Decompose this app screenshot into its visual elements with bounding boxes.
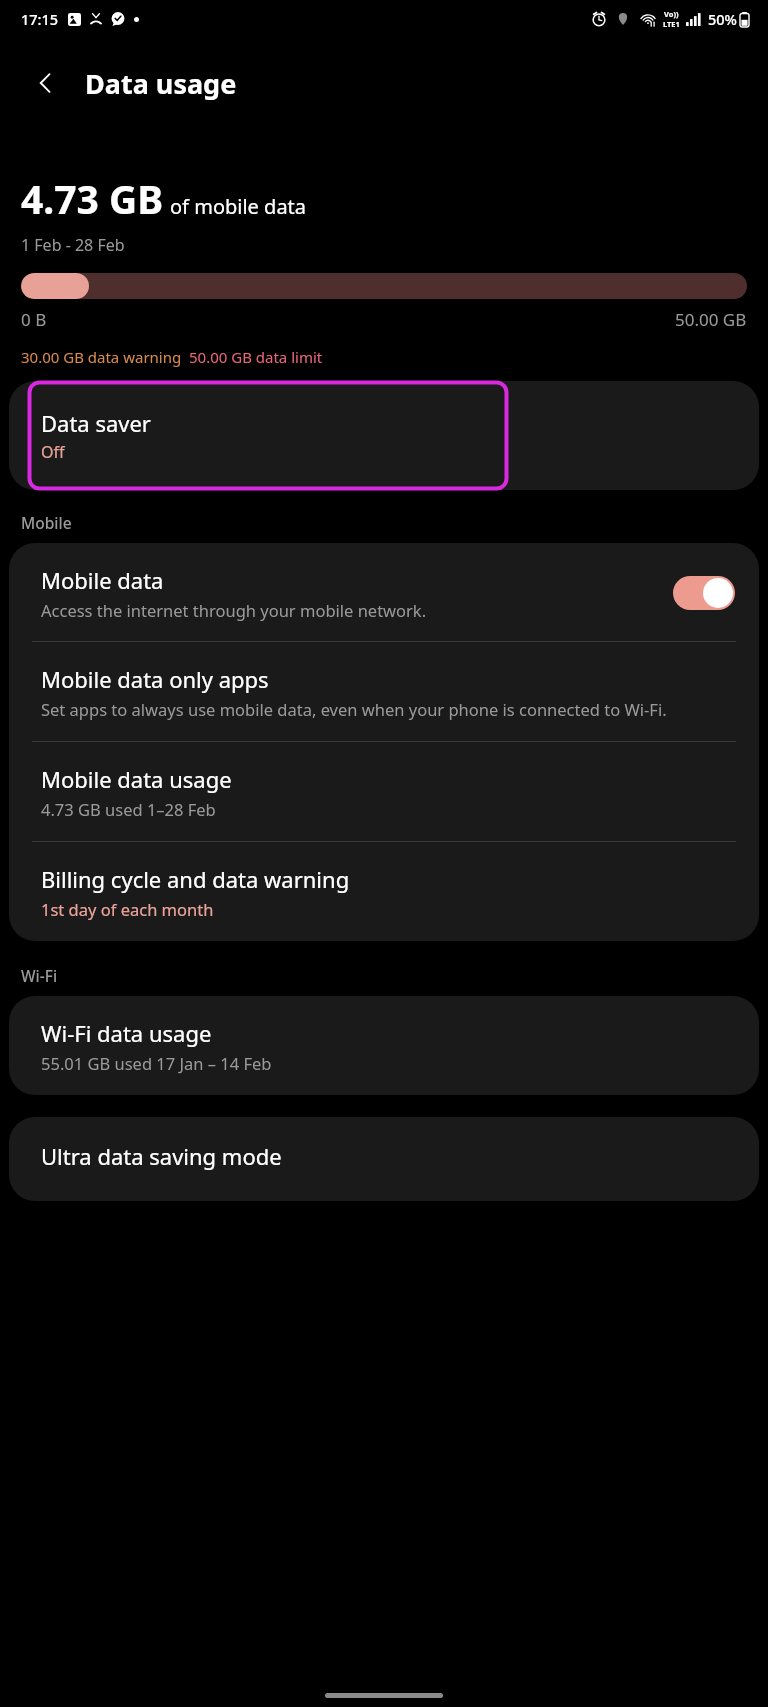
button[interactable]: Mobile data bbox=[9, 543, 759, 641]
button[interactable]: Mobile data toggle bbox=[673, 576, 735, 610]
staticText: 0 B bbox=[21, 308, 47, 331]
staticText: Ultra data saving mode bbox=[41, 1141, 282, 1171]
staticText: 55.01 GB used 17 Jan – 14 Feb bbox=[41, 1052, 272, 1074]
staticText: Wi-Fi data usage bbox=[41, 1018, 212, 1048]
button[interactable]: Mobile data only apps bbox=[9, 642, 759, 741]
staticText: 4.73 GB used 1–28 Feb bbox=[41, 798, 216, 820]
button[interactable]: Wi-Fi data usage bbox=[9, 996, 759, 1095]
staticText: 50.00 GB data limit bbox=[189, 347, 323, 367]
staticText: 1st day of each month bbox=[41, 898, 214, 920]
staticText: 17:15 bbox=[21, 9, 59, 29]
staticText: Vo)) bbox=[664, 9, 679, 19]
staticText: Data usage bbox=[85, 65, 237, 102]
staticText: Set apps to always use mobile data, even… bbox=[41, 698, 667, 720]
staticText: Data saver bbox=[41, 408, 151, 438]
button[interactable]: Ultra data saving mode bbox=[9, 1117, 759, 1201]
staticText: Off bbox=[41, 441, 65, 463]
staticText: 1 Feb - 28 Feb bbox=[21, 234, 125, 256]
button[interactable]: Back bbox=[20, 57, 72, 109]
staticText: Mobile data usage bbox=[41, 764, 232, 794]
staticText: LTE1 bbox=[663, 19, 680, 29]
button[interactable]: Billing cycle and data warning bbox=[9, 842, 759, 941]
staticText: of mobile data bbox=[170, 193, 307, 220]
staticText: Access the internet through your mobile … bbox=[41, 599, 427, 621]
staticText: 30.00 GB data warning bbox=[21, 347, 182, 367]
button[interactable]: Data saver bbox=[9, 381, 759, 490]
staticText: 50.00 GB bbox=[675, 308, 747, 331]
staticText: Mobile data bbox=[41, 565, 164, 595]
staticText: 4.73 GB bbox=[21, 172, 164, 225]
staticText: Mobile data only apps bbox=[41, 664, 269, 694]
button[interactable]: Mobile data usage bbox=[9, 742, 759, 841]
staticText: Billing cycle and data warning bbox=[41, 864, 350, 894]
staticText: Mobile bbox=[21, 512, 72, 533]
staticText: Wi-Fi bbox=[21, 965, 58, 986]
staticText: 50% bbox=[708, 9, 737, 29]
